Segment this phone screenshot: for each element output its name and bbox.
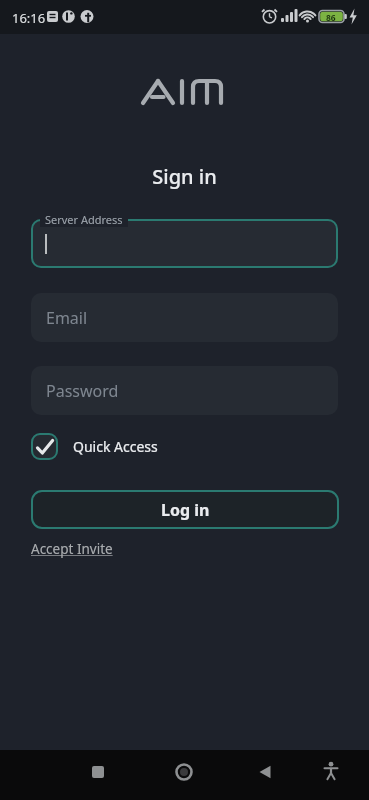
staticText: Password	[46, 380, 119, 402]
button[interactable]	[31, 219, 338, 268]
staticText: Sign in	[0, 163, 369, 190]
staticText: 86	[326, 12, 336, 24]
staticText: Server Address	[45, 212, 123, 227]
button[interactable]: Email	[31, 293, 338, 342]
button[interactable]	[86, 760, 110, 784]
staticText: Email	[46, 307, 88, 329]
button[interactable]	[253, 760, 277, 784]
staticText: Quick Access	[73, 437, 158, 456]
button[interactable]	[319, 759, 343, 783]
button[interactable]	[172, 760, 196, 784]
button[interactable]: Quick Access	[31, 433, 158, 460]
staticText: Log in	[161, 499, 210, 521]
button[interactable]: Password	[31, 366, 338, 415]
button[interactable]: Accept Invite	[31, 540, 113, 558]
staticText: 16:16	[12, 9, 46, 27]
button[interactable]: Log in	[31, 490, 339, 529]
